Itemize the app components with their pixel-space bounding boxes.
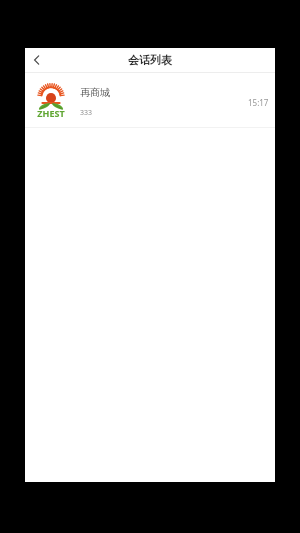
staticText: 会话列表 <box>128 53 172 67</box>
staticText: 333 <box>80 108 93 118</box>
button[interactable]: Back <box>25 48 49 72</box>
staticText: ZHEST <box>37 107 65 119</box>
button[interactable]: ZHEST <box>25 73 275 127</box>
staticText: 15:17 <box>248 97 269 108</box>
staticText: 再商城 <box>80 86 110 99</box>
